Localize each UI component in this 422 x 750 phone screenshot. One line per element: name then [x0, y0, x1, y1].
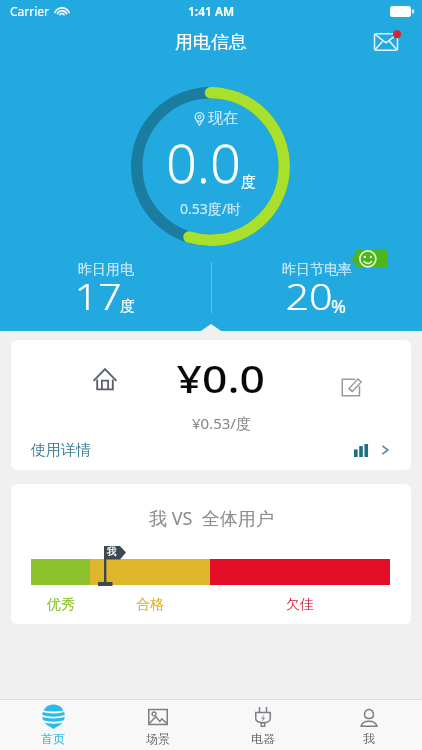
- staticText: %: [331, 294, 346, 319]
- staticText: 1:41 AM: [188, 3, 235, 19]
- button[interactable]: 使用详情: [11, 430, 411, 470]
- staticText: 优秀: [47, 596, 75, 614]
- staticText: 欠佳: [286, 596, 314, 614]
- staticText: 首页: [41, 731, 65, 746]
- staticText: 现在: [208, 109, 238, 128]
- staticText: 用电信息: [175, 31, 247, 54]
- staticText: 合格: [136, 596, 164, 614]
- staticText: 我: [363, 731, 375, 746]
- staticText: 我 VS 全体用户: [149, 506, 274, 531]
- button[interactable]: Home: [92, 366, 118, 392]
- staticText: 0.53度/时: [180, 199, 241, 218]
- staticText: 电器: [251, 731, 275, 746]
- staticText: 昨日用电: [78, 261, 134, 279]
- staticText: 度: [120, 297, 135, 316]
- staticText: Carrier: [10, 3, 50, 19]
- staticText: 20: [285, 270, 334, 320]
- button[interactable]: Edit: [341, 376, 362, 397]
- staticText: ¥0.0: [176, 352, 265, 404]
- staticText: 场景: [146, 731, 170, 746]
- button[interactable]: Messages: [369, 25, 403, 59]
- staticText: 0.0: [166, 125, 241, 199]
- staticText: 我: [107, 545, 117, 558]
- staticText: 度: [241, 173, 256, 192]
- button[interactable]: 电器: [210, 700, 316, 750]
- staticText: 使用详情: [31, 441, 91, 460]
- button[interactable]: 我: [316, 700, 422, 750]
- button[interactable]: 场景: [105, 700, 210, 750]
- button[interactable]: 首页: [0, 700, 105, 750]
- staticText: 17: [74, 270, 123, 320]
- staticText: ¥0.53/度: [192, 413, 251, 433]
- staticText: 昨日节电率: [282, 261, 352, 279]
